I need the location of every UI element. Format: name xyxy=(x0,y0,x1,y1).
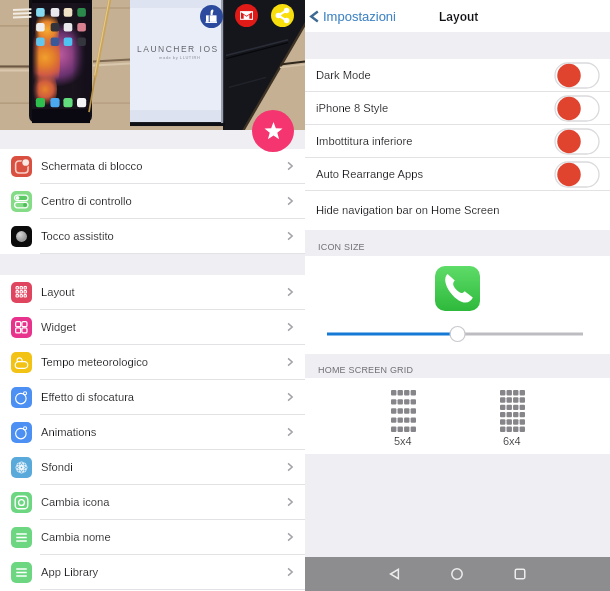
button[interactable]: 5x4 xyxy=(383,378,423,447)
button[interactable]: Schermata di blocco xyxy=(0,149,305,184)
button[interactable]: Share by Gmail xyxy=(235,4,258,27)
button[interactable]: Tempo meteorologico xyxy=(0,345,305,380)
staticText: Imbottitura inferiore xyxy=(316,135,413,148)
staticText: Impostazioni xyxy=(323,9,396,24)
button[interactable] xyxy=(327,326,583,342)
staticText: Hide navigation bar on Home Screen xyxy=(316,204,500,217)
staticText: Schermata di blocco xyxy=(41,160,143,173)
button[interactable]: Share xyxy=(271,4,294,27)
staticText: Tocco assistito xyxy=(41,230,114,243)
button[interactable]: Effetto di sfocatura xyxy=(0,380,305,415)
staticText: Tempo meteorologico xyxy=(41,356,148,369)
staticText: 6x4 xyxy=(503,435,521,447)
button[interactable]: Toggle xyxy=(555,63,599,88)
button[interactable]: Dark Mode xyxy=(305,59,610,92)
staticText: made by LLUTIRH xyxy=(159,55,201,59)
button[interactable]: App Library xyxy=(0,555,305,590)
button[interactable]: Animations xyxy=(0,415,305,450)
button[interactable]: Sfondi xyxy=(0,450,305,485)
staticText: Layout xyxy=(41,286,75,299)
button[interactable]: Toggle xyxy=(555,96,599,121)
button[interactable]: Recents xyxy=(503,557,537,591)
staticText: 5x4 xyxy=(394,435,412,447)
button[interactable]: Toggle xyxy=(555,129,599,154)
staticText: Layout xyxy=(439,10,479,23)
button[interactable]: Home xyxy=(440,557,474,591)
button[interactable]: Back xyxy=(378,557,412,591)
button[interactable]: Tocco assistito xyxy=(0,219,305,254)
staticText: HOME SCREEN GRID xyxy=(318,365,414,375)
staticText: Cambia icona xyxy=(41,496,110,509)
staticText: Sfondi xyxy=(41,461,73,474)
staticText: App Library xyxy=(41,566,99,579)
staticText: Widget xyxy=(41,321,76,334)
staticText: LAUNCHER IOS xyxy=(137,44,219,53)
button[interactable]: 6x4 xyxy=(492,378,532,447)
button[interactable]: Impostazioni xyxy=(307,9,396,24)
button[interactable]: Hide navigation bar on Home Screen xyxy=(305,191,610,230)
button[interactable]: Toggle xyxy=(555,162,599,187)
button[interactable]: Auto Rearrange Apps xyxy=(305,158,610,191)
button[interactable]: Like on Facebook xyxy=(200,5,223,28)
button[interactable]: Widget xyxy=(0,310,305,345)
button[interactable]: Favourite xyxy=(252,110,294,152)
staticText: Effetto di sfocatura xyxy=(41,391,135,404)
staticText: Centro di controllo xyxy=(41,195,132,208)
button[interactable]: Cambia icona xyxy=(0,485,305,520)
staticText: iPhone 8 Style xyxy=(316,102,389,115)
button[interactable]: Cambia nome xyxy=(0,520,305,555)
staticText: Animations xyxy=(41,426,97,439)
staticText: Auto Rearrange Apps xyxy=(316,168,423,181)
staticText: Cambia nome xyxy=(41,531,111,544)
button[interactable]: iPhone 8 Style xyxy=(305,92,610,125)
button[interactable]: Layout xyxy=(0,275,305,310)
button[interactable]: Imbottitura inferiore xyxy=(305,125,610,158)
staticText: ICON SIZE xyxy=(318,242,365,252)
button[interactable]: Centro di controllo xyxy=(0,184,305,219)
staticText: Dark Mode xyxy=(316,69,371,82)
